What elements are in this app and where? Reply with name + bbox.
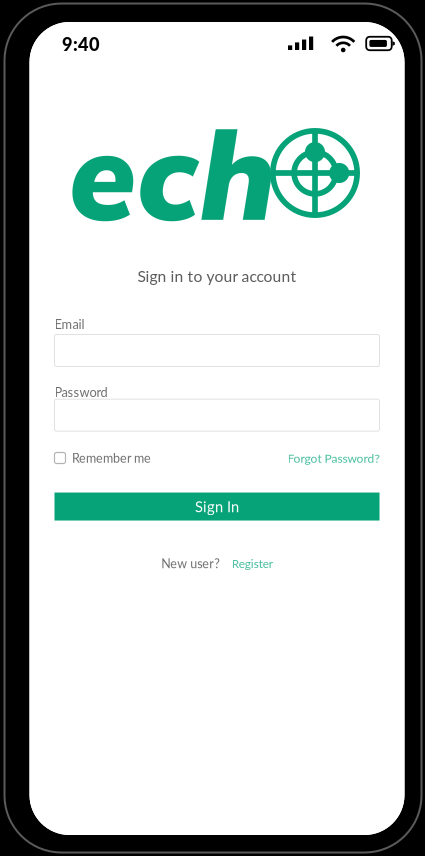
staticText: New user? [161,556,220,571]
staticText: ech [68,97,275,251]
staticText: Email [54,316,84,332]
staticText: Sign In [195,498,239,515]
staticText: Remember me [72,450,151,465]
staticText: Sign in to your account [137,267,296,285]
staticText: 9:40 [62,33,100,55]
staticText: Password [54,384,107,400]
button[interactable]: Sign In [54,492,379,520]
staticText: Register [232,556,273,571]
button[interactable]: Register [232,556,273,571]
button[interactable]: Remember me [54,450,151,465]
button[interactable]: Forgot Password? [287,451,379,465]
staticText: Forgot Password? [287,451,379,465]
